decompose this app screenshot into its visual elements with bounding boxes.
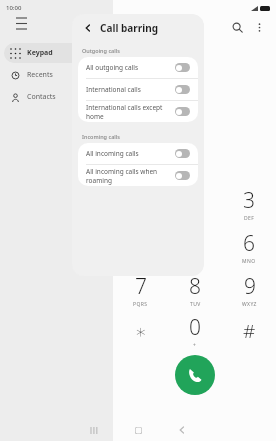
button[interactable]: All outgoing calls (78, 57, 198, 78)
button[interactable]: All incoming calls (78, 143, 198, 164)
staticText: 0 (189, 313, 201, 342)
staticText: DEF (244, 215, 255, 222)
button[interactable]: Recents (4, 65, 109, 85)
staticText: Contacts (27, 92, 56, 102)
button[interactable]: More options (248, 16, 270, 38)
staticText: International calls (86, 85, 172, 94)
staticText: WXYZ (242, 301, 257, 308)
button[interactable]: 5 (168, 225, 222, 268)
staticText: International calls except home (86, 103, 172, 121)
staticText: ∗ (135, 320, 147, 342)
button[interactable]: Search (226, 16, 248, 38)
staticText: All outgoing calls (86, 63, 172, 72)
button[interactable]: 8 (168, 268, 222, 311)
button[interactable]: International calls except home (78, 101, 198, 122)
staticText: All incoming calls (86, 149, 172, 158)
staticText: 10:00 (6, 4, 22, 12)
staticText: Keypad (27, 48, 53, 58)
button[interactable]: # (222, 311, 276, 351)
staticText: # (243, 318, 256, 344)
button[interactable]: 6 (222, 225, 276, 268)
button[interactable]: Recents (72, 419, 116, 441)
button[interactable]: Back (160, 419, 204, 441)
staticText: All incoming calls when roaming (86, 167, 172, 185)
staticText: + (193, 342, 197, 349)
staticText: Recents (27, 70, 53, 80)
staticText: 9 (244, 272, 256, 301)
button[interactable]: Back (80, 20, 96, 36)
staticText: PQRS (133, 301, 148, 308)
button[interactable]: 2 (168, 182, 222, 225)
staticText: Call barring (100, 21, 159, 35)
staticText: MNO (242, 258, 256, 265)
staticText: 8 (189, 272, 201, 301)
staticText: Incoming calls (82, 133, 120, 140)
button[interactable]: Contacts (4, 87, 109, 107)
button[interactable]: Menu (8, 10, 34, 36)
button[interactable]: All incoming calls when roaming (78, 165, 198, 186)
button[interactable]: Keypad (4, 43, 109, 63)
button[interactable]: 7 (113, 268, 168, 311)
button[interactable]: 3 (222, 182, 276, 225)
button[interactable]: Home (116, 419, 160, 441)
button[interactable]: Call (175, 355, 215, 395)
staticText: Outgoing calls (82, 47, 120, 54)
button[interactable]: 9 (222, 268, 276, 311)
staticText: 3 (243, 186, 255, 215)
staticText: TUV (190, 301, 201, 308)
button[interactable]: 0 (168, 311, 222, 351)
button[interactable]: ∗ (113, 311, 168, 351)
button[interactable]: 1 (113, 182, 168, 225)
staticText: 6 (243, 229, 255, 258)
button[interactable]: International calls (78, 79, 198, 100)
staticText: 7 (135, 272, 147, 301)
